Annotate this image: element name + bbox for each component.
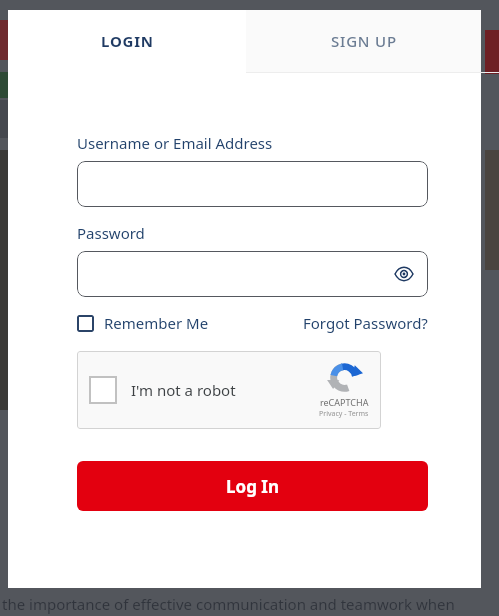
button[interactable] bbox=[89, 376, 117, 404]
button[interactable]: Forgot Password? bbox=[303, 313, 428, 333]
button[interactable]: I'm not a robot bbox=[77, 351, 381, 429]
staticText: reCAPTCHA bbox=[320, 396, 369, 408]
staticText: Forgot Password? bbox=[303, 313, 428, 333]
staticText: Log In bbox=[226, 475, 279, 498]
staticText: I'm not a robot bbox=[131, 380, 236, 400]
staticText: the importance of effective communicatio… bbox=[2, 594, 499, 616]
button[interactable]: Log In bbox=[77, 461, 428, 511]
staticText: Remember Me bbox=[104, 313, 209, 333]
staticText: Password bbox=[77, 223, 145, 243]
staticText: Username or Email Address bbox=[77, 133, 273, 153]
button[interactable]: Show password bbox=[77, 251, 428, 297]
staticText: SIGN UP bbox=[331, 31, 397, 51]
button[interactable]: SIGN UP bbox=[246, 10, 481, 72]
staticText: Privacy - Terms bbox=[319, 409, 369, 419]
button[interactable]: Remember Me bbox=[77, 313, 209, 333]
button[interactable]: Show password bbox=[390, 260, 418, 288]
staticText: LOGIN bbox=[101, 31, 154, 51]
button[interactable]: LOGIN bbox=[8, 10, 246, 72]
button[interactable] bbox=[77, 161, 428, 207]
